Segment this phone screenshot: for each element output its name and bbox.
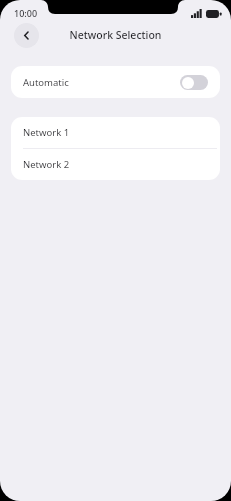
- staticText: Network 2: [23, 158, 70, 171]
- button[interactable]: Network 2: [11, 149, 220, 180]
- button[interactable]: Back: [14, 23, 39, 48]
- staticText: Network 1: [23, 126, 70, 139]
- button[interactable]: Automatic network selection toggle: [180, 75, 208, 90]
- staticText: Automatic: [23, 76, 69, 89]
- staticText: 10:00: [14, 7, 38, 19]
- button[interactable]: Network 1: [11, 117, 220, 148]
- staticText: Network Selection: [0, 28, 231, 42]
- button[interactable]: Automatic: [11, 66, 220, 98]
